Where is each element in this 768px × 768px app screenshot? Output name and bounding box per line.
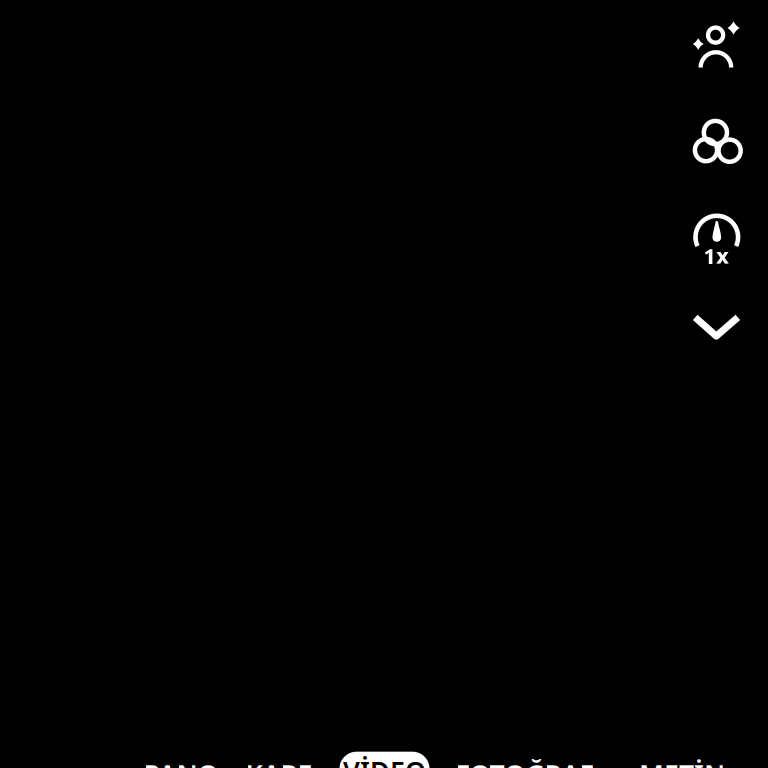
button[interactable]: FOTOĞRAF (441, 745, 607, 768)
staticText: KARE (245, 756, 312, 768)
staticText: VİDEO (343, 753, 426, 768)
button[interactable]: VİDEO (339, 752, 429, 768)
button[interactable]: Zoom, 1x (687, 210, 747, 270)
button[interactable]: More camera options (686, 310, 746, 344)
button[interactable]: PANO (129, 745, 232, 768)
staticText: FOTOĞRAF (455, 756, 593, 768)
staticText: METİN (639, 756, 725, 768)
button[interactable]: KARE (231, 745, 326, 768)
button[interactable]: METİN (625, 745, 739, 768)
button[interactable]: Photographic Styles (686, 8, 746, 68)
staticText: PANO (143, 756, 218, 768)
button[interactable]: Filters (686, 106, 746, 166)
